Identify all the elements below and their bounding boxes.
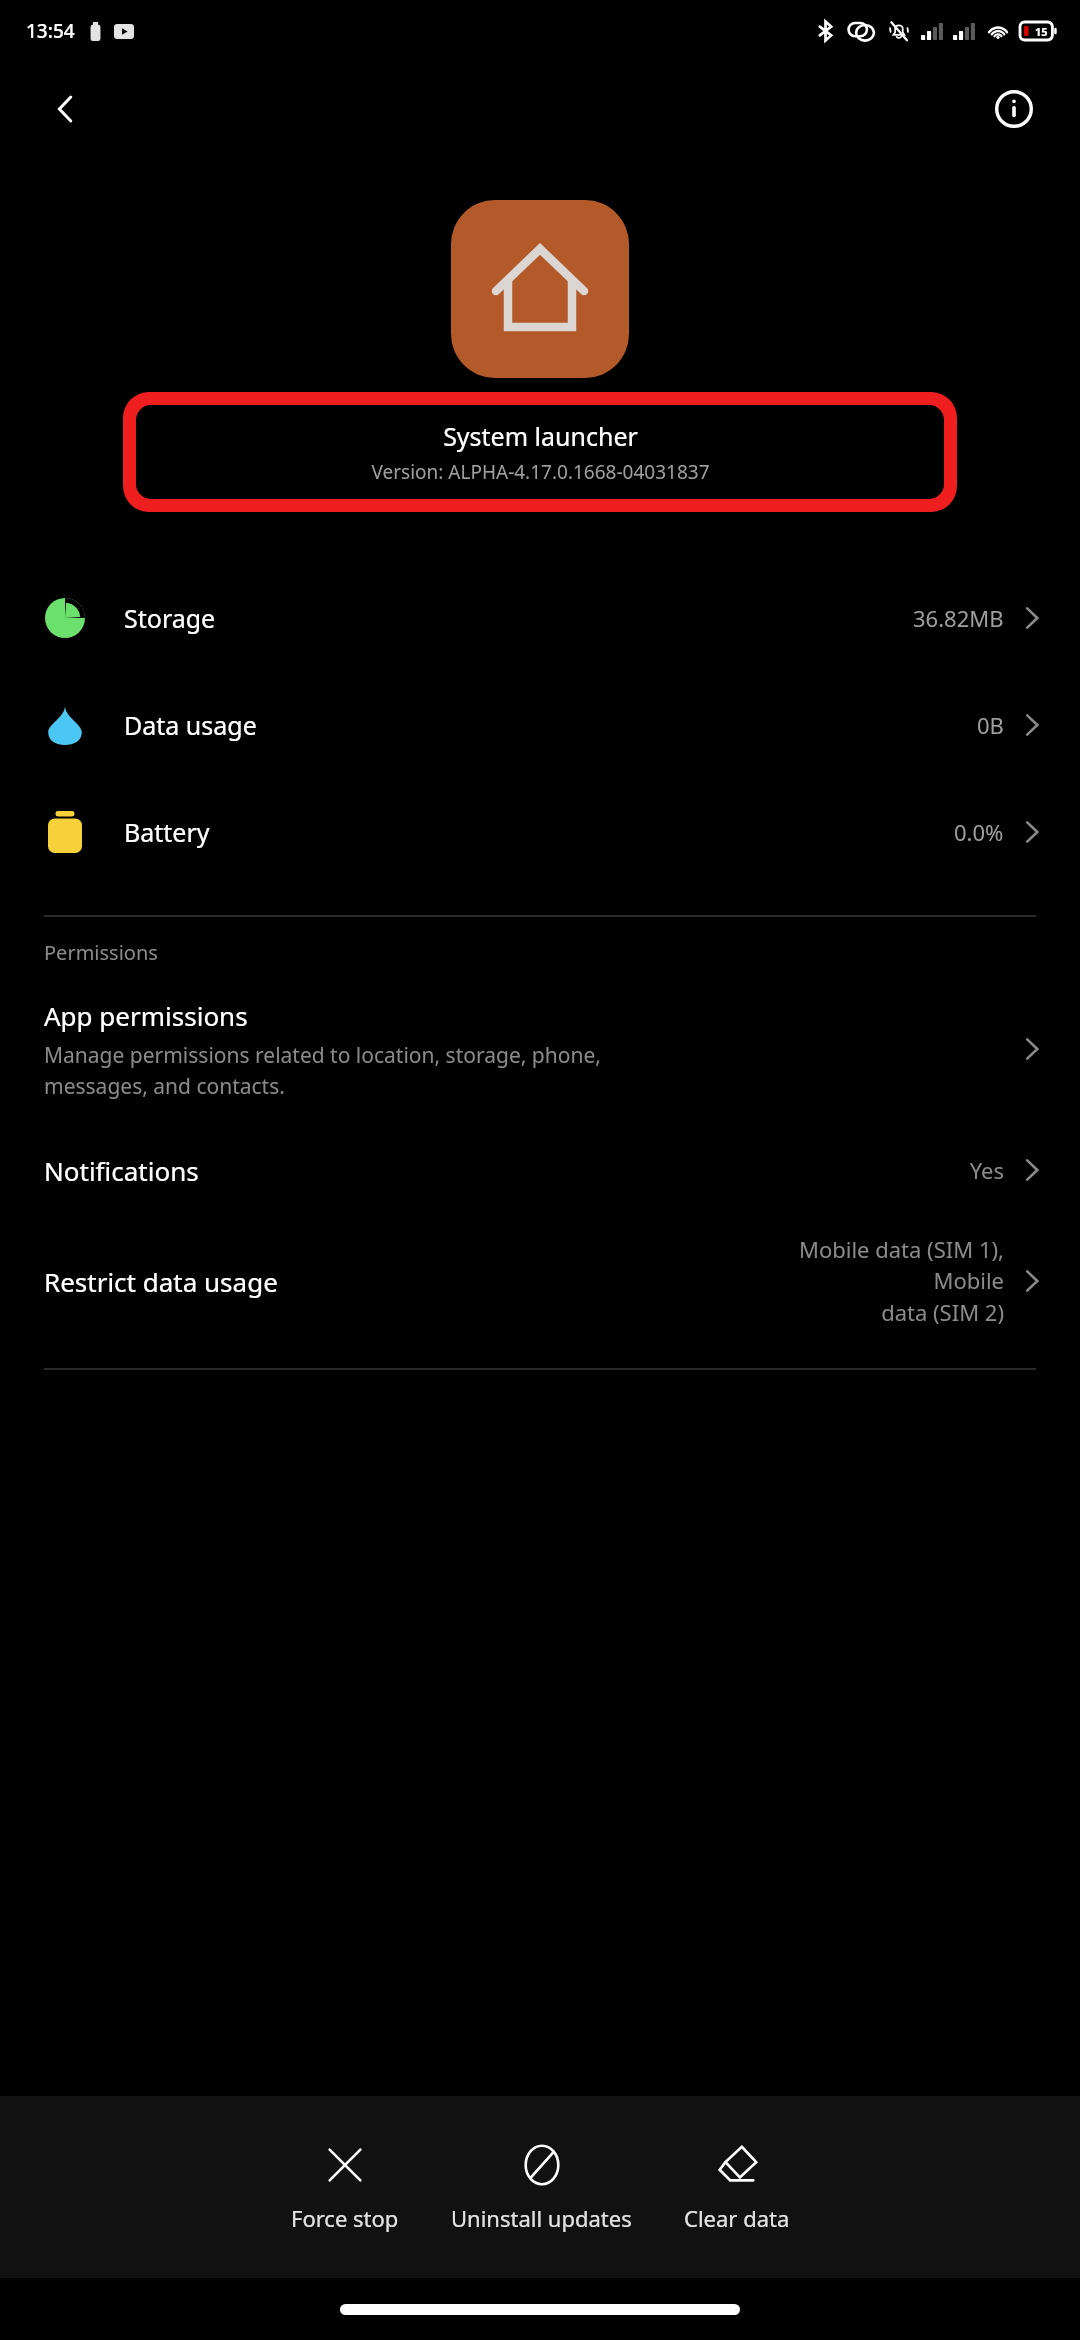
- button[interactable]: Clear data: [670, 2131, 804, 2243]
- staticText: Notifications: [44, 1153, 199, 1188]
- button[interactable]: Battery: [0, 778, 1080, 885]
- staticText: App permissions: [44, 998, 248, 1033]
- button[interactable]: App info: [986, 81, 1042, 137]
- button[interactable]: Restrict data usage: [0, 1220, 1080, 1342]
- staticText: Permissions: [44, 939, 158, 966]
- staticText: 0B: [977, 710, 1004, 740]
- staticText: System launcher: [443, 419, 638, 453]
- staticText: 15: [1035, 24, 1048, 39]
- staticText: Data usage: [124, 708, 257, 742]
- staticText: Battery: [124, 815, 210, 849]
- staticText: Restrict data usage: [44, 1264, 278, 1299]
- staticText: Force stop: [291, 2203, 399, 2233]
- button[interactable]: Data usage: [0, 671, 1080, 778]
- button[interactable]: Force stop: [277, 2131, 413, 2243]
- staticText: 0.0%: [954, 817, 1004, 847]
- staticText: Storage: [124, 601, 216, 635]
- staticText: Mobile data (SIM 1), Mobile data (SIM 2): [729, 1234, 1004, 1328]
- staticText: Version: ALPHA-4.17.0.1668-04031837: [371, 459, 710, 485]
- button[interactable]: Storage: [0, 564, 1080, 671]
- staticText: Manage permissions related to location, …: [44, 1041, 601, 1100]
- button[interactable]: Uninstall updates: [437, 2131, 646, 2243]
- button[interactable]: System launcher: [136, 405, 944, 499]
- staticText: Clear data: [684, 2203, 790, 2233]
- staticText: 36.82MB: [913, 603, 1004, 633]
- staticText: 13:54: [26, 18, 75, 44]
- button[interactable]: Back: [38, 81, 94, 137]
- staticText: Uninstall updates: [451, 2203, 632, 2233]
- button[interactable]: App permissions: [0, 976, 1080, 1120]
- staticText: Yes: [969, 1155, 1004, 1185]
- button[interactable]: Notifications: [0, 1120, 1080, 1220]
